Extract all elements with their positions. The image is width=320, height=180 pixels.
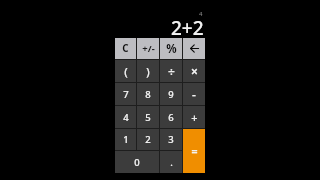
button[interactable]: +/- [137, 38, 159, 59]
button[interactable]: % [160, 38, 182, 59]
staticText: 4 [123, 111, 129, 124]
staticText: 2 [145, 133, 151, 146]
staticText: C [122, 42, 129, 55]
button[interactable]: . [160, 151, 182, 173]
button[interactable]: 5 [137, 106, 159, 128]
staticText: 8 [145, 88, 151, 101]
button[interactable]: ÷ [160, 60, 182, 82]
button[interactable]: 6 [160, 106, 182, 128]
staticText: ) [146, 64, 150, 79]
button[interactable]: = [183, 129, 205, 173]
staticText: = [191, 144, 198, 158]
staticText: 7 [123, 88, 129, 101]
staticText: 1 [123, 133, 129, 146]
staticText: ÷ [168, 63, 175, 79]
button[interactable]: C [115, 38, 136, 59]
staticText: 5 [145, 111, 151, 124]
button[interactable]: 7 [115, 83, 136, 105]
staticText: × [191, 63, 198, 79]
button[interactable]: 9 [160, 83, 182, 105]
staticText: 9 [168, 88, 174, 101]
button[interactable]: 3 [160, 129, 182, 150]
button[interactable]: 8 [137, 83, 159, 105]
button[interactable]: ( [115, 60, 136, 82]
staticText: ( [124, 64, 128, 79]
button[interactable]: 2 [137, 129, 159, 150]
button[interactable]: ) [137, 60, 159, 82]
button[interactable]: - [183, 83, 205, 105]
button[interactable]: Backspace [183, 38, 205, 59]
staticText: - [192, 86, 196, 102]
staticText: + [191, 110, 198, 125]
staticText: % [166, 41, 177, 57]
staticText: 2+2 [171, 15, 204, 41]
staticText: 0 [134, 156, 140, 169]
staticText: +/- [142, 42, 155, 55]
staticText: 3 [168, 133, 174, 146]
button[interactable]: + [183, 106, 205, 128]
button[interactable]: 4 [115, 106, 136, 128]
button[interactable]: 0 [115, 151, 159, 173]
staticText: . [170, 156, 173, 169]
staticText: 4 [199, 10, 203, 18]
staticText: 6 [168, 111, 174, 124]
button[interactable]: 1 [115, 129, 136, 150]
button[interactable]: × [183, 60, 205, 82]
